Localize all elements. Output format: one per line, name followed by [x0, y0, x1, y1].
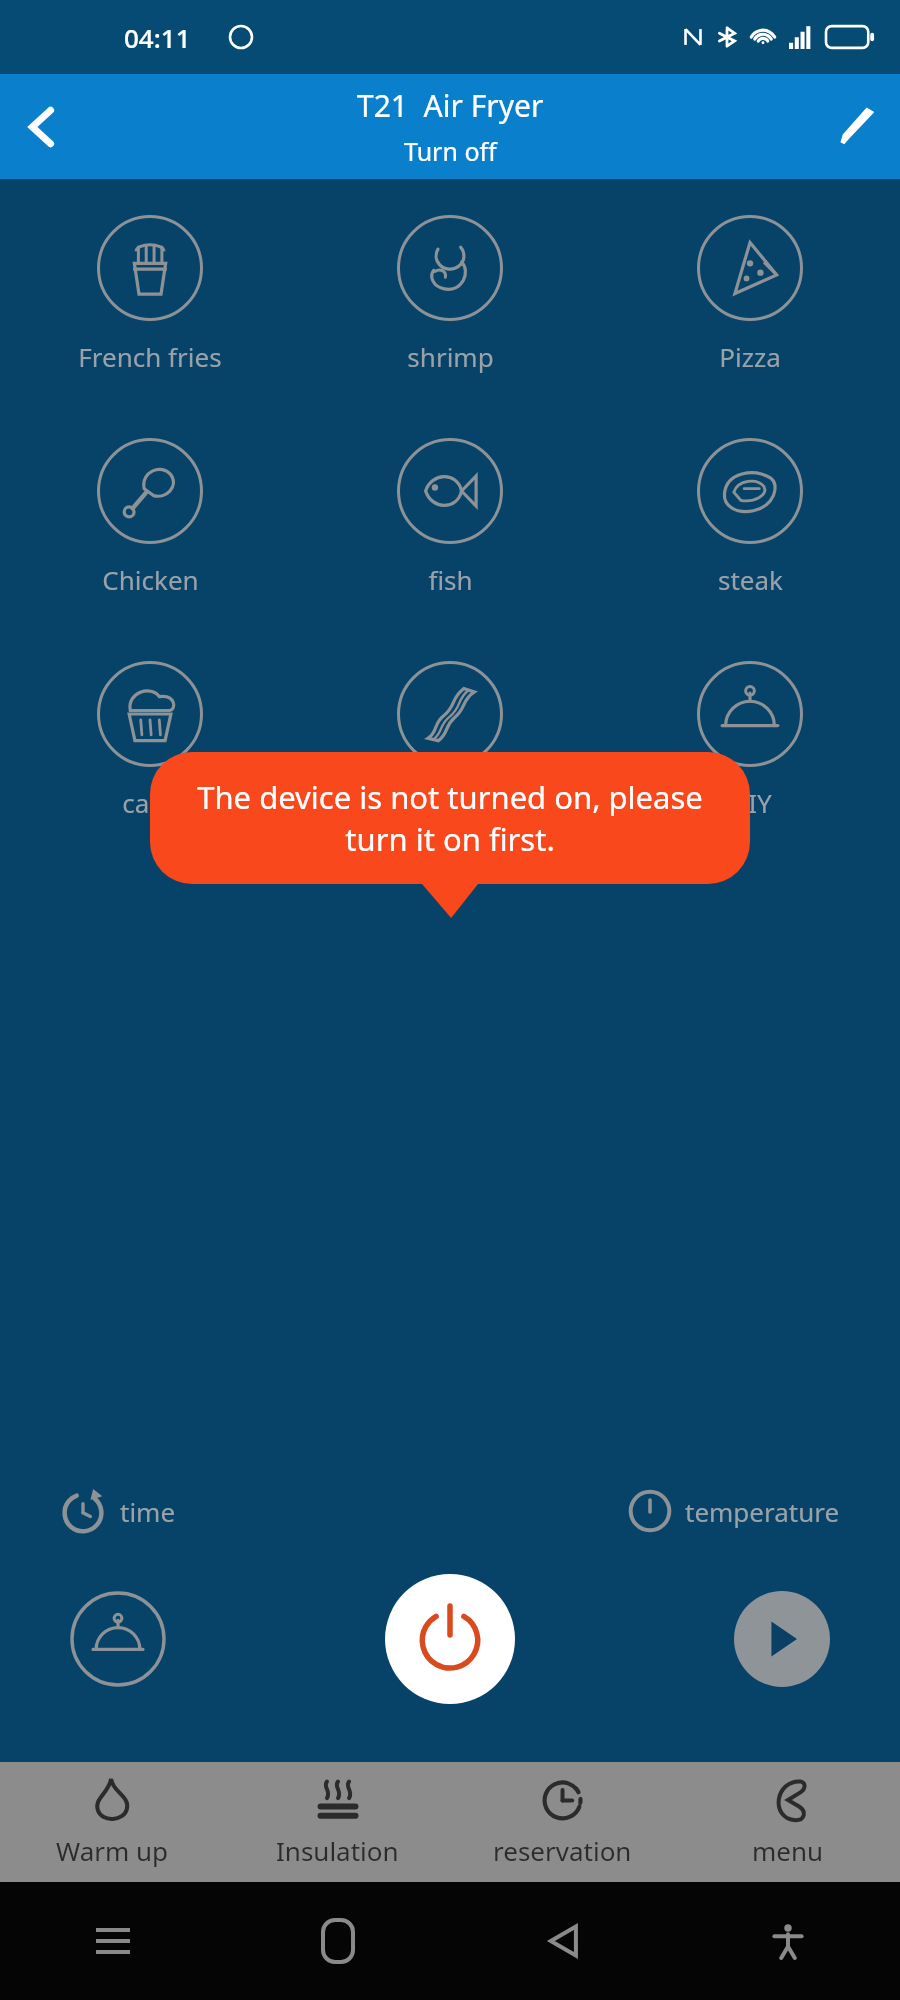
button[interactable]: Edit: [814, 84, 900, 170]
button[interactable]: Home: [225, 1882, 450, 2000]
staticText: menu: [752, 1833, 824, 1868]
button[interactable]: Start: [734, 1591, 830, 1687]
staticText: reservation: [493, 1833, 632, 1868]
button[interactable]: cake: [0, 655, 300, 826]
staticText: steak: [718, 562, 783, 597]
staticText: fish: [428, 562, 473, 597]
staticText: Warm up: [56, 1833, 169, 1868]
button[interactable]: Insulation: [225, 1762, 450, 1882]
button[interactable]: Warm up: [0, 1762, 225, 1882]
button[interactable]: Pizza: [600, 209, 900, 380]
staticText: The device is not turned on, please turn…: [176, 776, 724, 860]
button[interactable]: reservation: [450, 1762, 675, 1882]
button[interactable]: French fries: [0, 209, 300, 380]
staticText: DIY: [729, 785, 772, 820]
staticText: Bacon: [412, 785, 488, 820]
staticText: temperature: [685, 1494, 840, 1529]
staticText: time: [120, 1494, 176, 1529]
button[interactable]: Power: [385, 1574, 515, 1704]
button[interactable]: steak: [600, 432, 900, 603]
button[interactable]: time: [60, 1488, 450, 1534]
staticText: cake: [122, 785, 178, 820]
staticText: Turn off: [404, 134, 497, 168]
button[interactable]: Recents: [0, 1882, 225, 2000]
staticText: Pizza: [719, 339, 781, 374]
staticText: French fries: [78, 339, 222, 374]
button[interactable]: Chicken: [0, 432, 300, 603]
button[interactable]: temperature: [450, 1488, 840, 1534]
button[interactable]: Back: [450, 1882, 675, 2000]
button[interactable]: DIY: [600, 655, 900, 826]
button[interactable]: fish: [300, 432, 600, 603]
button[interactable]: Bacon: [300, 655, 600, 826]
button[interactable]: Back: [0, 84, 86, 170]
button[interactable]: shrimp: [300, 209, 600, 380]
staticText: Chicken: [102, 562, 199, 597]
staticText: 04:11: [124, 20, 191, 55]
button[interactable]: Accessibility: [675, 1882, 900, 2000]
button[interactable]: Keep warm: [70, 1591, 166, 1687]
button[interactable]: menu: [675, 1762, 900, 1882]
staticText: T21 Air Fryer: [357, 85, 544, 126]
staticText: shrimp: [407, 339, 494, 374]
staticText: Insulation: [276, 1833, 399, 1868]
